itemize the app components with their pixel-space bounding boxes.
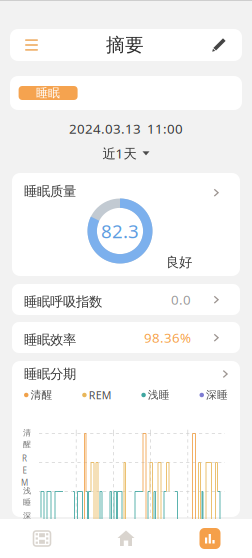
staticText: 摘要 <box>106 33 144 56</box>
button[interactable]: Records <box>0 519 84 558</box>
staticText: 清 <box>23 428 31 438</box>
button[interactable]: Statistics <box>168 519 252 558</box>
staticText: 深 <box>23 511 31 521</box>
button[interactable]: 睡眠呼吸指数 <box>12 284 240 315</box>
button[interactable]: 摘要 <box>10 29 242 61</box>
staticText: 浅睡 <box>148 388 170 401</box>
staticText: 醒 <box>23 439 31 449</box>
staticText: 2024.03.13 11:00 <box>69 120 183 137</box>
button[interactable]: 睡眠分期 <box>12 361 240 387</box>
staticText: 睡眠呼吸指数 <box>24 293 102 310</box>
staticText: E <box>22 465 26 476</box>
staticText: 睡眠质量 <box>24 183 76 199</box>
staticText: 良好 <box>166 254 192 270</box>
staticText: REM <box>89 388 112 402</box>
button[interactable]: 睡眠质量 <box>12 173 240 276</box>
staticText: 浅 <box>23 486 31 496</box>
button[interactable]: Home <box>84 519 168 558</box>
staticText: 近1天 <box>102 144 136 162</box>
button[interactable]: 近1天 <box>102 144 149 162</box>
button[interactable]: 睡眠 <box>19 86 78 100</box>
staticText: 98.36% <box>144 329 191 346</box>
staticText: 深睡 <box>206 388 228 401</box>
staticText: 睡 <box>23 497 31 507</box>
staticText: M <box>21 477 28 488</box>
staticText: 睡眠 <box>36 86 60 100</box>
staticText: 睡眠效率 <box>24 331 76 348</box>
staticText: 82.3 <box>101 219 139 243</box>
staticText: 清醒 <box>30 388 52 401</box>
button[interactable]: 睡眠效率 <box>12 322 240 353</box>
staticText: R <box>22 453 27 464</box>
staticText: 睡眠分期 <box>24 366 76 382</box>
staticText: 0.0 <box>171 291 191 308</box>
